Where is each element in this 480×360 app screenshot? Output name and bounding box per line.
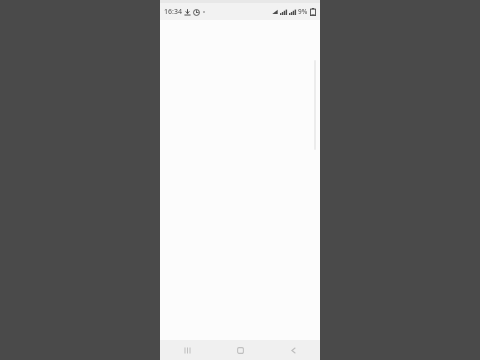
staticText: 16:34 xyxy=(164,7,182,17)
staticText: 9% xyxy=(298,7,308,16)
button[interactable]: Back xyxy=(267,340,320,360)
button[interactable]: Home xyxy=(214,340,267,360)
button[interactable]: Recents xyxy=(160,340,214,360)
